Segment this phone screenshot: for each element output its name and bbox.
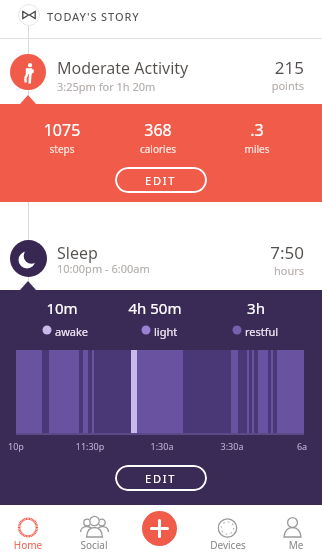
button[interactable]: [18, 4, 40, 26]
staticText: light: [154, 324, 214, 339]
staticText: EDIT: [145, 471, 177, 486]
staticText: 11:30p: [70, 440, 110, 452]
staticText: Me: [271, 538, 321, 552]
staticText: 1:30a: [142, 440, 182, 452]
staticText: 3:25pm for 1h 20m: [57, 79, 257, 94]
button[interactable]: [70, 507, 118, 555]
staticText: Home: [3, 538, 53, 552]
staticText: 3h: [206, 298, 306, 318]
staticText: 3:30a: [212, 440, 252, 452]
staticText: 368: [108, 119, 208, 141]
staticText: 6a: [287, 440, 317, 452]
staticText: Moderate Activity: [57, 57, 257, 79]
staticText: 7:50: [204, 241, 304, 264]
staticText: Social: [69, 538, 119, 552]
staticText: 10p: [8, 440, 38, 452]
staticText: 4h 50m: [105, 298, 205, 318]
button[interactable]: [272, 507, 320, 555]
button[interactable]: [0, 203, 322, 289]
staticText: awake: [55, 324, 115, 339]
button[interactable]: [204, 507, 252, 555]
button[interactable]: EDIT: [115, 465, 207, 491]
button[interactable]: EDIT: [115, 167, 207, 193]
staticText: restful: [245, 324, 305, 339]
staticText: points: [204, 78, 304, 93]
staticText: .3: [207, 119, 307, 141]
staticText: EDIT: [145, 173, 177, 188]
staticText: miles: [207, 142, 307, 156]
staticText: steps: [12, 142, 112, 156]
staticText: TODAY'S STORY: [47, 9, 197, 24]
staticText: 10m: [12, 298, 112, 318]
staticText: 1075: [12, 119, 112, 141]
staticText: calories: [108, 142, 208, 156]
staticText: Sleep: [57, 242, 257, 264]
staticText: hours: [204, 263, 304, 278]
staticText: 215: [204, 56, 304, 79]
button[interactable]: [142, 511, 177, 546]
staticText: 10:00pm - 6:00am: [57, 261, 257, 276]
button[interactable]: [4, 507, 52, 555]
button[interactable]: [0, 39, 322, 104]
staticText: Devices: [203, 538, 253, 552]
